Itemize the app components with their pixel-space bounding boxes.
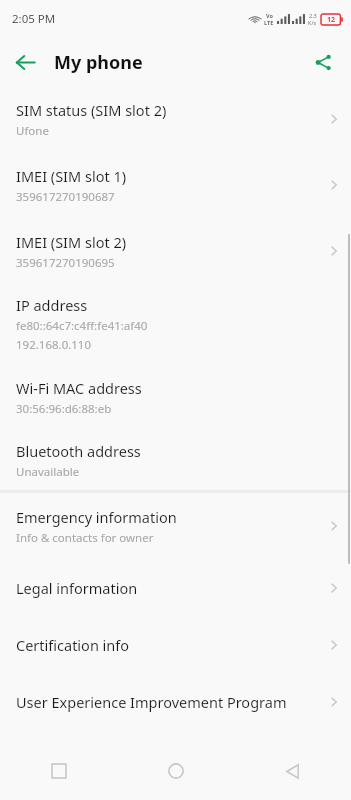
button[interactable]: Bluetooth address [0,430,351,490]
staticText: fe80::64c7:c4ff:fe41:af40 [16,318,148,334]
staticText: 359617270190687 [16,189,115,205]
button[interactable]: Recent apps [0,742,117,800]
staticText: 2:05 PM [12,11,56,27]
staticText: IMEI (SIM slot 2) [16,232,127,252]
staticText: Certification info [16,635,130,655]
staticText: My phone [54,50,143,75]
button[interactable]: SIM status (SIM slot 2) [0,86,351,152]
button[interactable]: Certification info [0,616,351,673]
button[interactable]: Wi-Fi MAC address [0,364,351,430]
button[interactable]: IP address [0,284,351,364]
staticText: Wi-Fi MAC address [16,378,142,398]
button[interactable]: Share [303,42,343,82]
staticText: 12 [327,15,336,25]
button[interactable]: Home [117,742,234,800]
staticText: Legal information [16,578,138,598]
button[interactable]: Emergency information [0,493,351,559]
staticText: IP address [16,295,88,315]
button[interactable]: Back [234,742,351,800]
staticText: LTE [264,19,274,26]
button[interactable]: IMEI (SIM slot 2) [0,218,351,284]
button[interactable]: Legal information [0,559,351,616]
staticText: Info & contacts for owner [16,530,154,546]
staticText: 2.3 [309,12,317,19]
staticText: Unavailable [16,464,80,480]
staticText: User Experience Improvement Program [16,692,287,712]
staticText: 30:56:96:d6:88:eb [16,401,112,417]
button[interactable]: IMEI (SIM slot 1) [0,152,351,218]
staticText: Vo [266,12,273,19]
staticText: 359617270190695 [16,255,115,271]
staticText: SIM status (SIM slot 2) [16,100,167,120]
staticText: K/s [308,19,317,26]
staticText: Emergency information [16,507,177,527]
button[interactable]: Back [5,42,45,82]
staticText: 192.168.0.110 [16,337,92,353]
staticText: Bluetooth address [16,441,141,461]
button[interactable]: User Experience Improvement Program [0,673,351,730]
staticText: IMEI (SIM slot 1) [16,166,127,186]
staticText: Ufone [16,123,49,139]
